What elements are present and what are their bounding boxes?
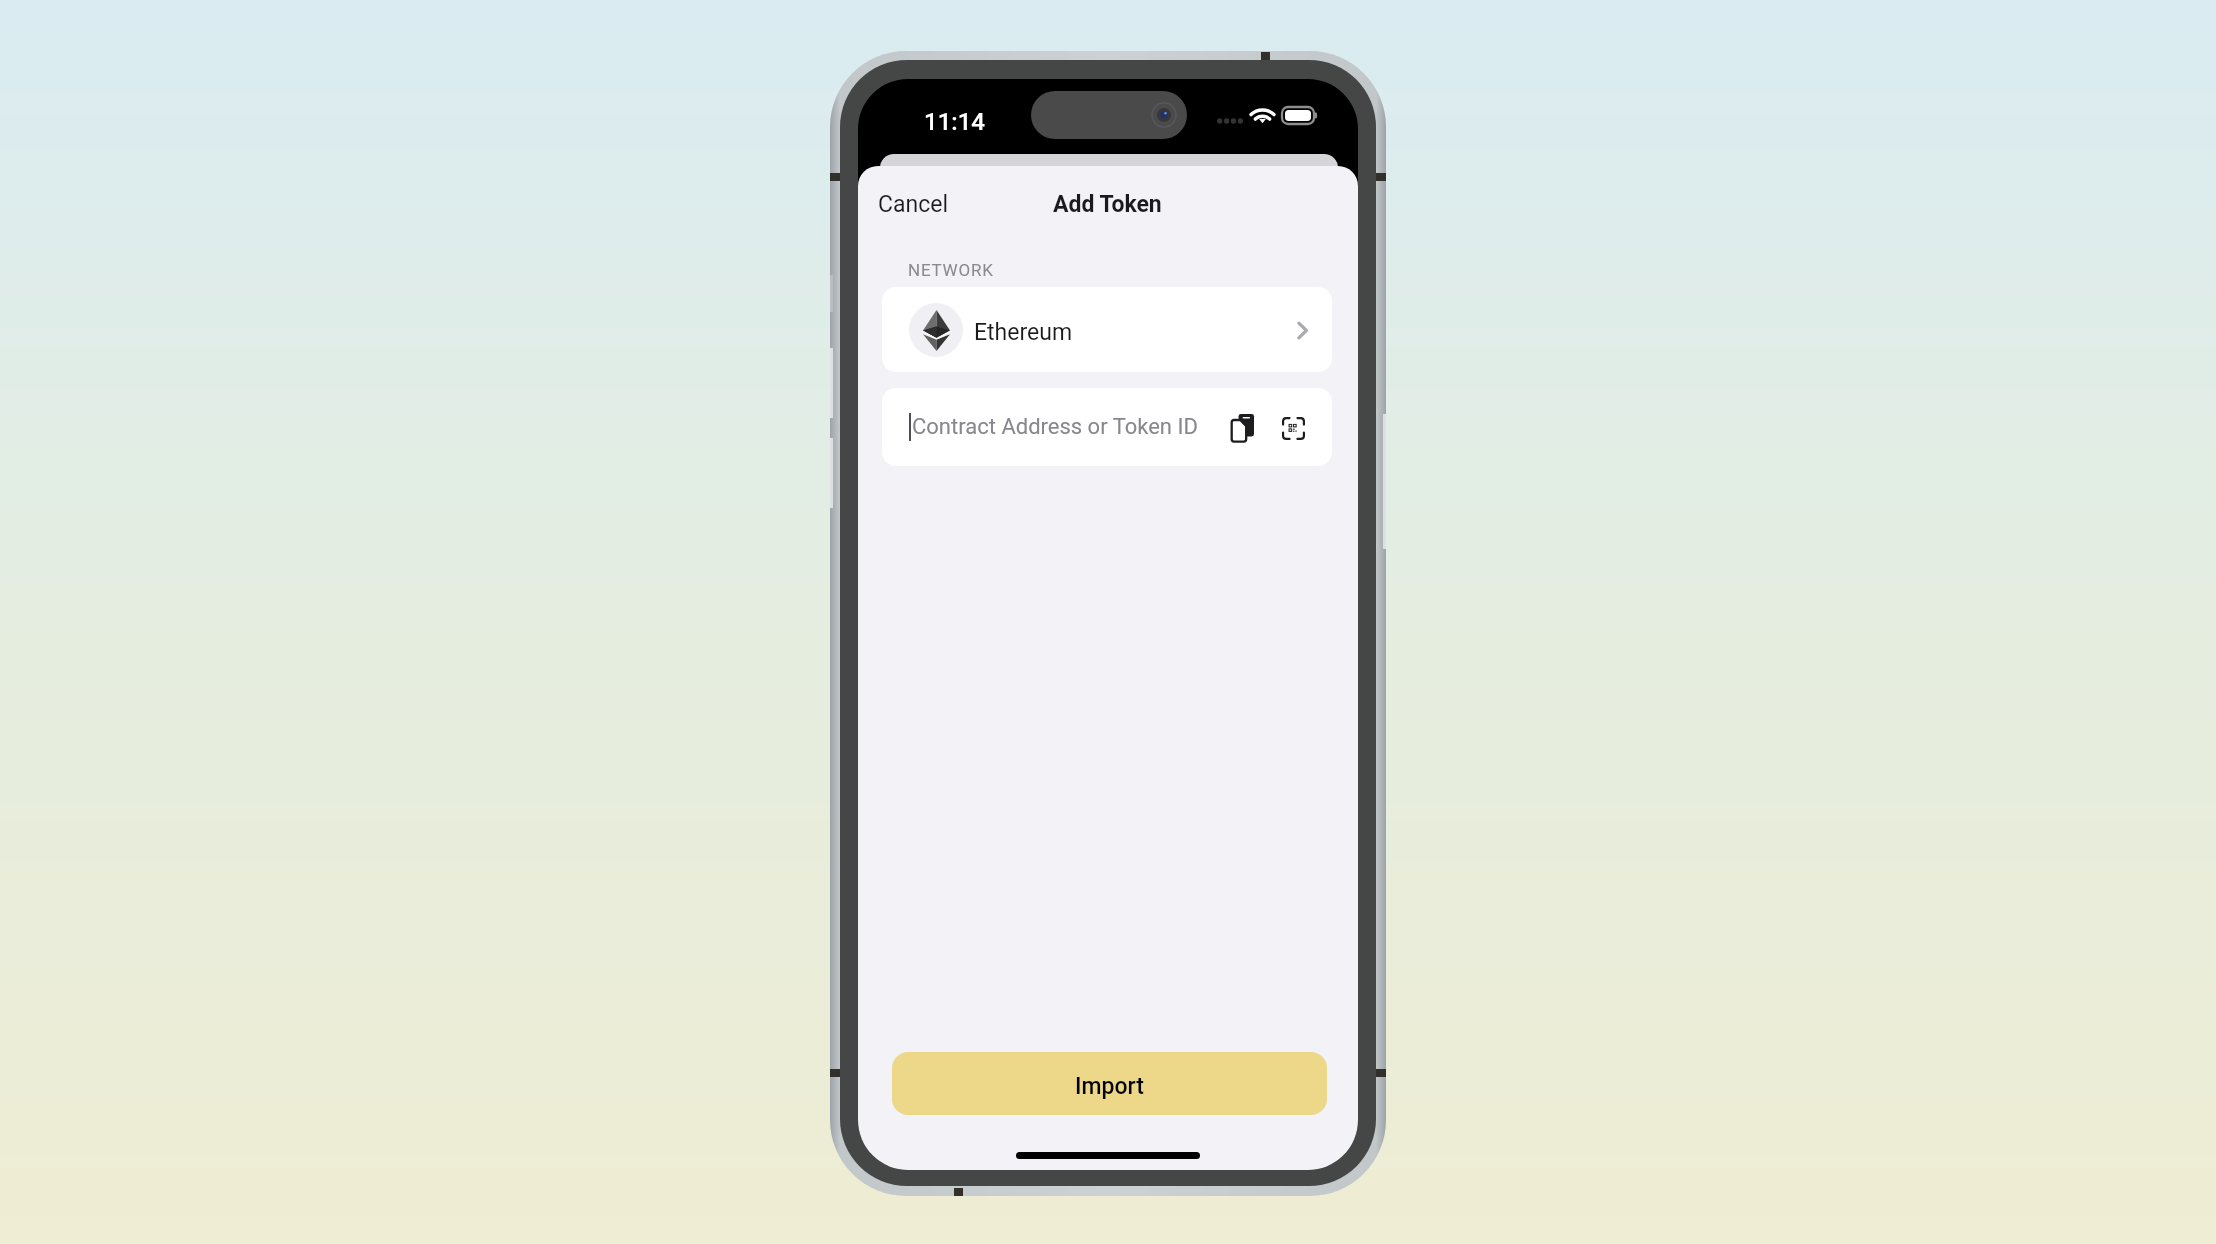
staticText: Ethereum (974, 319, 1073, 346)
button[interactable]: Contract Address or Token ID (882, 388, 1332, 466)
button[interactable]: Scan QR code (1273, 408, 1313, 448)
staticText: 11:14 (924, 108, 985, 136)
button[interactable]: Ethereum (882, 287, 1332, 372)
button[interactable]: Import (892, 1052, 1327, 1115)
staticText: Cancel (878, 191, 949, 218)
staticText: NETWORK (908, 260, 994, 280)
button[interactable]: Paste from clipboard (1222, 408, 1262, 448)
staticText: Contract Address or Token ID (912, 414, 1198, 440)
button[interactable]: Cancel (868, 181, 959, 228)
staticText: Add Token (1053, 191, 1162, 218)
staticText: Import (1075, 1073, 1144, 1100)
